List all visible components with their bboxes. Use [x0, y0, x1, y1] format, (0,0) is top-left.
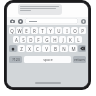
- button[interactable]: F: [35, 36, 42, 43]
- staticText: S: [22, 37, 25, 43]
- staticText: O: [73, 28, 77, 34]
- staticText: space: [43, 57, 53, 62]
- button[interactable]: W: [16, 27, 22, 34]
- button[interactable]: H: [51, 36, 58, 43]
- button[interactable]: J: [59, 36, 66, 43]
- button[interactable]: X: [26, 45, 33, 52]
- button[interactable]: Z: [18, 45, 25, 52]
- button[interactable]: P: [79, 27, 86, 34]
- button[interactable]: I: [63, 27, 70, 34]
- staticText: ?123: [12, 57, 20, 62]
- button[interactable]: A: [13, 36, 19, 43]
- staticText: Q: [10, 28, 14, 34]
- staticText: H: [53, 37, 57, 43]
- staticText: K: [69, 37, 72, 43]
- button[interactable]: L: [75, 36, 82, 43]
- button[interactable]: V: [42, 45, 50, 52]
- staticText: L: [77, 37, 80, 43]
- button[interactable]: ?123: [9, 56, 22, 63]
- button[interactable]: Shift: [9, 45, 17, 52]
- button[interactable]: T: [39, 27, 46, 34]
- button[interactable]: D: [27, 36, 34, 43]
- button[interactable]: O: [71, 27, 78, 34]
- button[interactable]: U: [55, 27, 62, 34]
- button[interactable]: K: [67, 36, 74, 43]
- staticText: R: [33, 28, 36, 34]
- staticText: N: [62, 46, 66, 52]
- button[interactable]: N: [60, 45, 68, 52]
- staticText: M: [71, 46, 76, 52]
- button[interactable]: S: [20, 36, 26, 43]
- button[interactable]: Y: [47, 27, 54, 34]
- button[interactable]: Send: [80, 18, 86, 24]
- staticText: C: [36, 46, 39, 52]
- staticText: I: [66, 28, 68, 34]
- button[interactable]: E: [23, 27, 30, 34]
- staticText: V: [45, 46, 48, 52]
- staticText: G: [45, 37, 49, 43]
- button[interactable]: [18, 4, 62, 15]
- button[interactable]: B: [51, 45, 59, 52]
- staticText: E: [25, 28, 28, 34]
- button[interactable]: G: [43, 36, 50, 43]
- staticText: T: [41, 28, 44, 34]
- button[interactable]: [25, 18, 78, 24]
- button[interactable]: M: [69, 45, 77, 52]
- button[interactable]: return: [73, 56, 86, 63]
- staticText: Z: [20, 46, 23, 52]
- button[interactable]: Backspace: [78, 45, 86, 52]
- button[interactable]: Camera: [9, 18, 15, 24]
- staticText: return: [74, 57, 85, 62]
- staticText: W: [17, 28, 22, 34]
- staticText: F: [37, 37, 40, 43]
- staticText: B: [54, 46, 57, 52]
- staticText: Y: [49, 28, 52, 34]
- button[interactable]: C: [34, 45, 41, 52]
- staticText: J: [62, 37, 64, 43]
- staticText: A: [15, 37, 18, 43]
- staticText: X: [28, 46, 31, 52]
- button[interactable]: space: [24, 56, 71, 63]
- staticText: P: [81, 28, 84, 34]
- button[interactable]: Q: [9, 27, 15, 34]
- staticText: D: [29, 37, 33, 43]
- staticText: U: [57, 28, 61, 34]
- button[interactable]: R: [31, 27, 38, 34]
- button[interactable]: Apps: [17, 18, 23, 24]
